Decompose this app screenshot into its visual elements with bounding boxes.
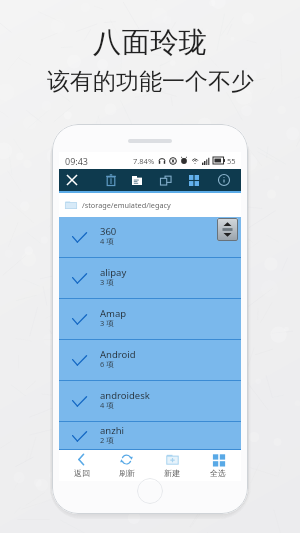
button[interactable]: alipay (59, 258, 241, 299)
staticText: 09:43 (65, 155, 89, 167)
staticText: 2 项 (100, 435, 114, 445)
button[interactable]: Details (214, 169, 234, 191)
staticText: 4 项 (100, 236, 114, 246)
staticText: 4 项 (100, 400, 114, 410)
staticText: 6 项 (100, 359, 114, 369)
staticText: 3 项 (100, 277, 114, 287)
staticText: 7.84% (133, 156, 155, 166)
staticText: 全选 (210, 468, 226, 478)
button[interactable]: 全选 (195, 450, 241, 481)
button[interactable]: anzhi (59, 422, 241, 450)
button[interactable]: Grid view (184, 169, 204, 191)
button[interactable]: 返回 (59, 450, 104, 481)
staticText: 八面玲珑 (93, 25, 207, 61)
staticText: 新建 (164, 468, 180, 478)
button[interactable]: Delete (101, 169, 121, 191)
staticText: /storage/emulated/legacy (82, 200, 171, 210)
staticText: androidesk (100, 389, 150, 402)
staticText: 3 项 (100, 318, 114, 328)
button[interactable]: Android (59, 340, 241, 381)
staticText: Android (100, 348, 136, 361)
button[interactable]: 新建 (149, 450, 195, 481)
button[interactable]: androidesk (59, 381, 241, 422)
button[interactable]: 360 (59, 217, 241, 258)
button[interactable]: Move to folder (127, 169, 147, 191)
button[interactable]: Close (62, 169, 82, 191)
button[interactable]: Amap (59, 299, 241, 340)
staticText: 刷新 (119, 468, 135, 478)
staticText: Amap (100, 307, 127, 320)
staticText: alipay (100, 266, 127, 279)
staticText: 返回 (74, 468, 90, 478)
staticText: 该有的功能一个不少 (47, 67, 254, 96)
button[interactable]: Scroll (217, 218, 238, 241)
staticText: 55 (227, 156, 236, 166)
button[interactable]: Copy (156, 169, 176, 191)
staticText: 360 (100, 225, 117, 238)
staticText: anzhi (100, 424, 124, 437)
button[interactable]: 刷新 (104, 450, 149, 481)
